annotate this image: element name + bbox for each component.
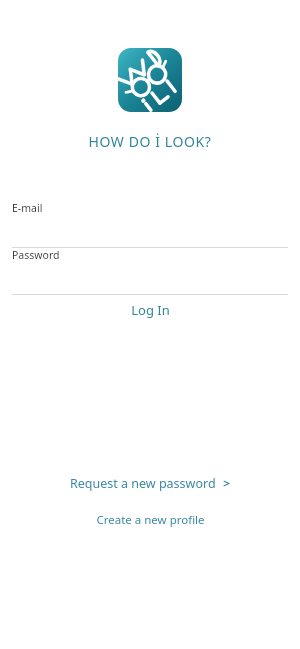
staticText: HOW DO İ LOOK?	[88, 132, 212, 151]
button[interactable]: E-mail	[0, 201, 300, 248]
staticText: E-mail	[12, 201, 43, 215]
button[interactable]: Password	[0, 248, 300, 295]
staticText: Request a new password	[70, 475, 216, 492]
button[interactable]: Log In	[0, 295, 300, 325]
staticText: Password	[12, 248, 60, 262]
button[interactable]: Create a new profile	[0, 508, 300, 532]
staticText: Log In	[131, 301, 170, 319]
button[interactable]: Request a new password	[0, 470, 300, 496]
button[interactable]: How Do I Look logo	[118, 48, 182, 112]
staticText: Create a new profile	[96, 512, 205, 528]
